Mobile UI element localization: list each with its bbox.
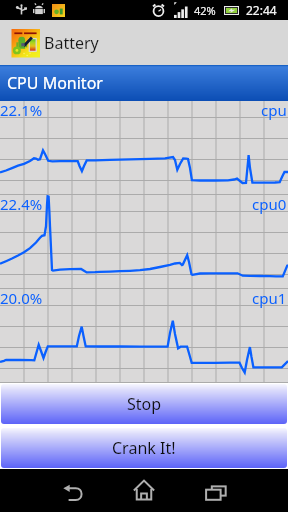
staticText: 42% (194, 3, 216, 18)
staticText: Stop (127, 393, 162, 415)
staticText: 20.0% (0, 288, 43, 308)
staticText: Battery (44, 32, 99, 54)
staticText: cpu (261, 100, 287, 120)
button[interactable]: Back (52, 469, 94, 512)
button[interactable]: Home (123, 469, 165, 512)
staticText: 22.1% (0, 100, 43, 120)
button[interactable]: Recent apps (195, 469, 237, 512)
button[interactable]: Stop (1, 384, 287, 424)
staticText: cpu0 (252, 194, 287, 214)
staticText: 22.4% (0, 194, 43, 214)
staticText: Crank It! (112, 437, 176, 459)
staticText: 22:44 (246, 2, 277, 18)
staticText: cpu1 (252, 288, 287, 308)
staticText: CPU Monitor (7, 72, 103, 94)
button[interactable]: Crank It! (1, 428, 287, 468)
